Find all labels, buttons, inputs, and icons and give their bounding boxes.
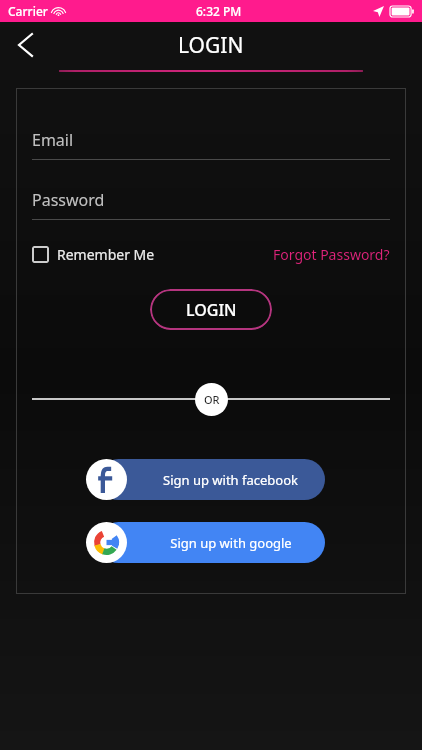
button[interactable]: Email	[32, 129, 390, 160]
staticText: Sign up with facebook	[163, 471, 298, 489]
staticText: Sign up with google	[170, 534, 292, 552]
button[interactable]: Remember Me	[32, 245, 155, 264]
staticText: 6:32 PM	[196, 3, 242, 19]
staticText: Password	[32, 189, 105, 211]
staticText: LOGIN	[186, 299, 237, 321]
staticText: OR	[204, 392, 220, 407]
staticText: Remember Me	[57, 245, 155, 264]
button[interactable]: LOGIN	[150, 289, 272, 330]
staticText: Email	[32, 129, 74, 151]
button[interactable]: Back	[8, 28, 42, 62]
staticText: Carrier	[8, 3, 48, 19]
button[interactable]: Password	[32, 189, 390, 220]
button[interactable]: Sign up with google	[98, 522, 325, 563]
button[interactable]: Forgot Password?	[273, 245, 390, 264]
staticText: LOGIN	[178, 31, 244, 60]
staticText: Forgot Password?	[273, 245, 390, 264]
button[interactable]: Sign up with facebook	[98, 459, 325, 500]
